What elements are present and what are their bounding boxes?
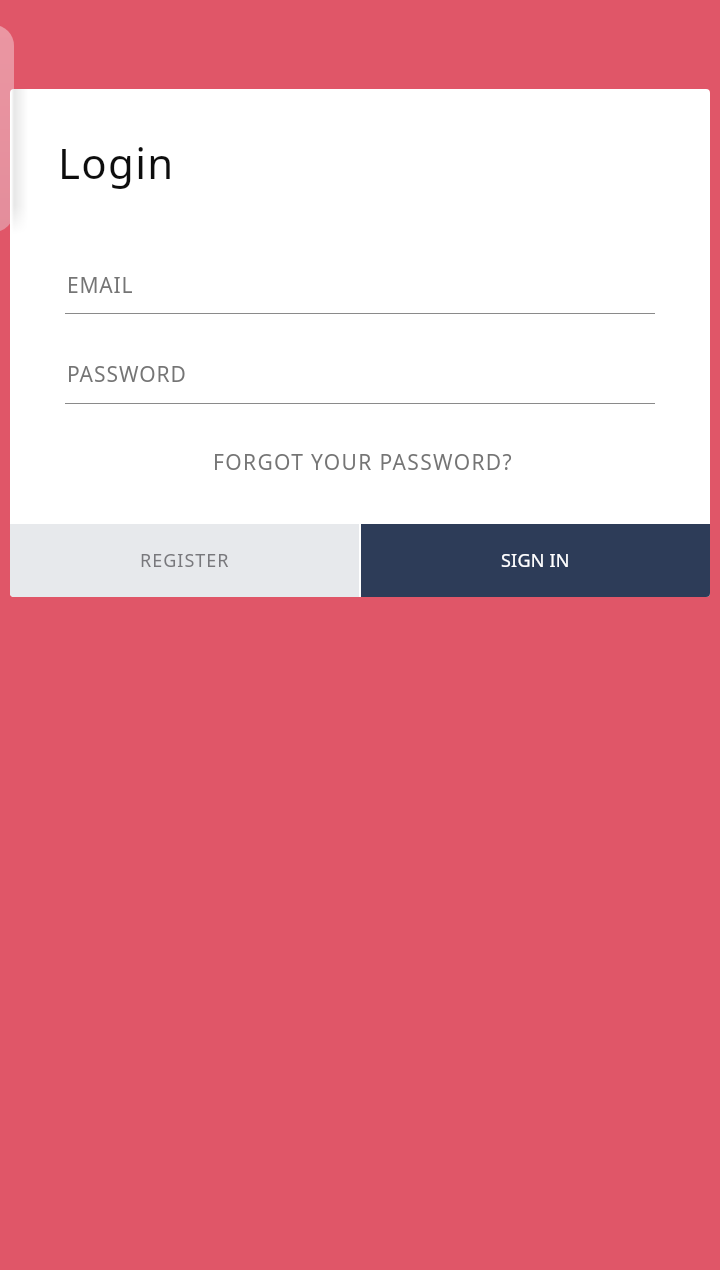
staticText: FORGOT YOUR PASSWORD? [213, 448, 514, 477]
button[interactable]: REGISTER [10, 524, 359, 597]
staticText: PASSWORD [67, 360, 187, 389]
staticText: REGISTER [140, 548, 230, 573]
staticText: EMAIL [67, 271, 134, 300]
button[interactable]: EMAIL [65, 249, 655, 314]
button[interactable]: SIGN IN [361, 524, 710, 597]
staticText: SIGN IN [501, 548, 570, 573]
button[interactable]: PASSWORD [65, 339, 655, 404]
button[interactable]: FORGOT YOUR PASSWORD? [13, 439, 710, 485]
staticText: Login [58, 134, 175, 191]
